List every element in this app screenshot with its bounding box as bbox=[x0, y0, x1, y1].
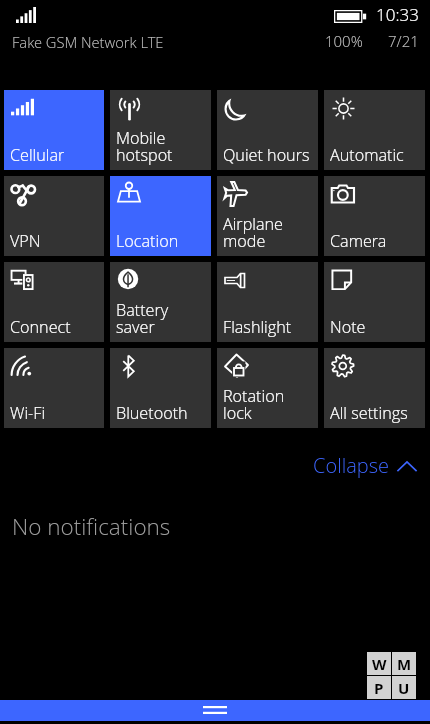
staticText: Airplane mode bbox=[223, 213, 283, 252]
staticText: All settings bbox=[330, 402, 408, 424]
staticText: Bluetooth bbox=[116, 402, 188, 424]
staticText: Rotation lock bbox=[223, 385, 285, 424]
staticText: M bbox=[397, 654, 412, 674]
staticText: Camera bbox=[330, 230, 387, 252]
staticText: No notifications bbox=[12, 511, 171, 542]
button[interactable]: Automatic bbox=[324, 90, 425, 170]
staticText: VPN bbox=[10, 230, 41, 252]
staticText: Mobile hotspot bbox=[116, 127, 173, 166]
button[interactable]: Note bbox=[324, 262, 425, 342]
staticText: 100% bbox=[325, 31, 363, 51]
button[interactable]: Rotation lock bbox=[217, 348, 318, 428]
staticText: Quiet hours bbox=[223, 144, 310, 166]
staticText: Automatic bbox=[330, 144, 404, 166]
staticText: Fake GSM Network LTE bbox=[12, 32, 164, 52]
staticText: P bbox=[374, 678, 384, 698]
button[interactable]: Wi-Fi bbox=[4, 348, 104, 428]
button[interactable]: Show navigation bar bbox=[0, 700, 430, 721]
button[interactable]: Connect bbox=[4, 262, 104, 342]
button[interactable]: Airplane mode bbox=[217, 176, 318, 256]
staticText: 10:33 bbox=[376, 3, 419, 26]
button[interactable]: Cellular bbox=[4, 90, 104, 170]
button[interactable]: Collapse bbox=[313, 452, 416, 479]
staticText: Flashlight bbox=[223, 316, 292, 338]
staticText: Battery saver bbox=[116, 299, 169, 338]
staticText: U bbox=[398, 678, 410, 698]
button[interactable]: Mobile hotspot bbox=[110, 90, 211, 170]
button[interactable]: Battery saver bbox=[110, 262, 211, 342]
staticText: Location bbox=[116, 230, 179, 252]
staticText: Wi-Fi bbox=[10, 402, 46, 424]
staticText: 7/21 bbox=[388, 31, 419, 51]
staticText: W bbox=[372, 654, 387, 674]
button[interactable]: Flashlight bbox=[217, 262, 318, 342]
staticText: Connect bbox=[10, 316, 71, 338]
staticText: Cellular bbox=[10, 144, 65, 166]
button[interactable]: All settings bbox=[324, 348, 425, 428]
button[interactable]: Location bbox=[110, 176, 211, 256]
staticText: Collapse bbox=[313, 452, 389, 479]
button[interactable]: Quiet hours bbox=[217, 90, 318, 170]
staticText: Note bbox=[330, 316, 366, 338]
button[interactable]: Bluetooth bbox=[110, 348, 211, 428]
button[interactable]: Camera bbox=[324, 176, 425, 256]
button[interactable]: VPN bbox=[4, 176, 104, 256]
